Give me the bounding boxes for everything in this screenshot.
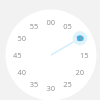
button[interactable]: Minute picker dial <box>0 0 100 100</box>
